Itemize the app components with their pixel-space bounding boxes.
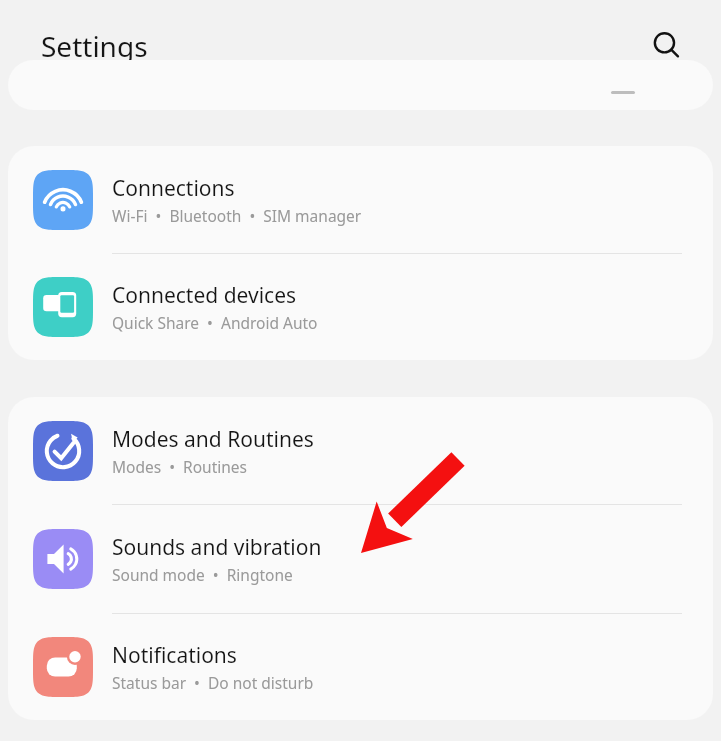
staticText: Wi-Fi • Bluetooth • SIM manager bbox=[112, 205, 362, 226]
button[interactable]: Connected devices bbox=[8, 254, 713, 360]
staticText: Quick Share • Android Auto bbox=[112, 312, 318, 333]
staticText: Connections bbox=[112, 174, 235, 203]
button[interactable]: Connections bbox=[8, 146, 713, 254]
staticText: Notifications bbox=[112, 641, 237, 670]
staticText: Connected devices bbox=[112, 281, 297, 310]
button[interactable]: Modes and Routines bbox=[8, 397, 713, 505]
staticText: Settings bbox=[41, 27, 148, 65]
button[interactable]: Notifications bbox=[8, 614, 713, 720]
button[interactable]: Search bbox=[645, 24, 689, 68]
staticText: Status bar • Do not disturb bbox=[112, 672, 314, 693]
staticText: Sound mode • Ringtone bbox=[112, 564, 293, 585]
staticText: Sounds and vibration bbox=[112, 533, 322, 562]
button[interactable]: Sounds and vibration bbox=[8, 505, 713, 614]
staticText: Modes • Routines bbox=[112, 456, 248, 477]
staticText: Modes and Routines bbox=[112, 425, 314, 454]
